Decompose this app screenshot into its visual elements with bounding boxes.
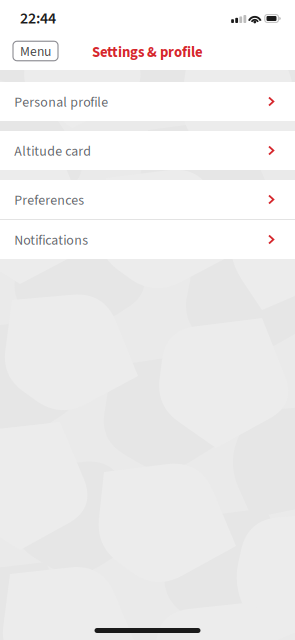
button[interactable]: Notifications: [0, 220, 295, 259]
button[interactable]: Personal profile: [0, 82, 295, 121]
staticText: Personal profile: [14, 93, 108, 112]
staticText: Settings & profile: [92, 42, 203, 63]
button[interactable]: Menu: [13, 41, 58, 61]
staticText: Notifications: [14, 231, 88, 250]
button[interactable]: Preferences: [0, 180, 295, 219]
staticText: Altitude card: [14, 142, 91, 161]
staticText: 22:44: [20, 7, 56, 30]
staticText: Menu: [20, 42, 51, 61]
button[interactable]: Altitude card: [0, 131, 295, 170]
staticText: Preferences: [14, 191, 84, 210]
